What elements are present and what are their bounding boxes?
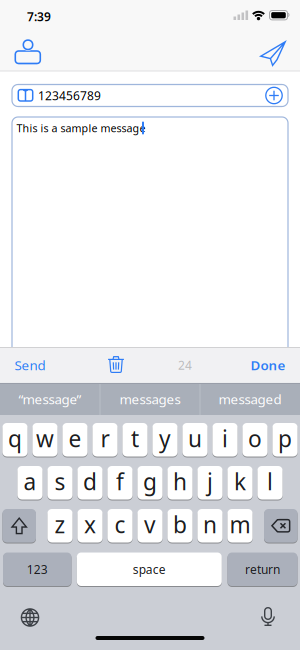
staticText: “message” [18, 390, 81, 408]
button[interactable]: u [182, 422, 208, 457]
staticText: space [133, 561, 166, 577]
staticText: o [248, 423, 262, 454]
button[interactable]: l [257, 465, 283, 500]
button[interactable]: g [137, 465, 163, 500]
staticText: 123456789 [38, 87, 101, 103]
button[interactable]: Shift [2, 508, 36, 543]
button[interactable]: Add recipient [265, 86, 283, 104]
staticText: f [116, 466, 124, 497]
staticText: e [68, 423, 81, 454]
button[interactable]: j [197, 465, 223, 500]
button[interactable]: Send [8, 350, 52, 380]
staticText: 123 [27, 561, 48, 577]
staticText: k [234, 466, 246, 497]
button[interactable]: b [167, 508, 193, 543]
staticText: n [203, 509, 217, 540]
staticText: w [36, 423, 54, 454]
button[interactable]: w [32, 422, 58, 457]
staticText: 7:39 [27, 8, 51, 24]
staticText: 24 [178, 357, 192, 373]
button[interactable]: Contacts [14, 38, 41, 65]
staticText: m [229, 509, 250, 540]
staticText: x [84, 509, 96, 540]
staticText: d [83, 466, 97, 497]
staticText: p [278, 423, 292, 454]
button[interactable]: d [77, 465, 103, 500]
staticText: Send [14, 356, 45, 374]
staticText: g [143, 466, 157, 497]
button[interactable]: a [17, 465, 43, 500]
staticText: i [222, 423, 228, 454]
button[interactable]: Done [243, 350, 293, 380]
button[interactable]: Delete [264, 508, 298, 543]
button[interactable]: Dictate [260, 607, 276, 626]
staticText: Done [250, 356, 285, 374]
button[interactable]: q [2, 422, 28, 457]
staticText: t [131, 423, 139, 454]
staticText: v [144, 509, 156, 540]
staticText: z [54, 509, 65, 540]
staticText: q [8, 423, 22, 454]
button[interactable]: s [47, 465, 73, 500]
button[interactable]: f [107, 465, 133, 500]
button[interactable]: i [212, 422, 238, 457]
button[interactable]: n [197, 508, 223, 543]
staticText: s [54, 466, 65, 497]
staticText: j [207, 466, 213, 497]
button[interactable]: r [92, 422, 118, 457]
staticText: u [188, 423, 202, 454]
button[interactable]: messaged [201, 383, 299, 415]
staticText: c [114, 509, 125, 540]
button[interactable]: t [122, 422, 148, 457]
button[interactable]: x [77, 508, 103, 543]
button[interactable]: z [47, 508, 73, 543]
button[interactable]: k [227, 465, 253, 500]
button[interactable]: h [167, 465, 193, 500]
staticText: messages [119, 390, 180, 408]
staticText: y [159, 423, 171, 454]
staticText: r [100, 423, 109, 454]
button[interactable]: Send [260, 41, 286, 66]
button[interactable]: c [107, 508, 133, 543]
button[interactable]: v [137, 508, 163, 543]
button[interactable]: space [77, 552, 222, 586]
staticText: return [245, 561, 280, 577]
button[interactable]: y [152, 422, 178, 457]
button[interactable]: p [272, 422, 298, 457]
button[interactable]: return [227, 552, 297, 586]
staticText: l [267, 466, 273, 497]
staticText: h [173, 466, 187, 497]
button[interactable]: Next keyboard [20, 608, 39, 627]
button[interactable]: m [227, 508, 253, 543]
button[interactable]: Delete [107, 356, 124, 373]
button[interactable]: e [62, 422, 88, 457]
button[interactable]: “message” [1, 383, 99, 415]
button[interactable]: 123 [3, 552, 71, 586]
staticText: This is a sample message [16, 121, 145, 135]
staticText: b [173, 509, 187, 540]
button[interactable]: o [242, 422, 268, 457]
staticText: messaged [218, 390, 281, 408]
button[interactable]: messages [101, 383, 199, 415]
staticText: a [23, 466, 36, 497]
